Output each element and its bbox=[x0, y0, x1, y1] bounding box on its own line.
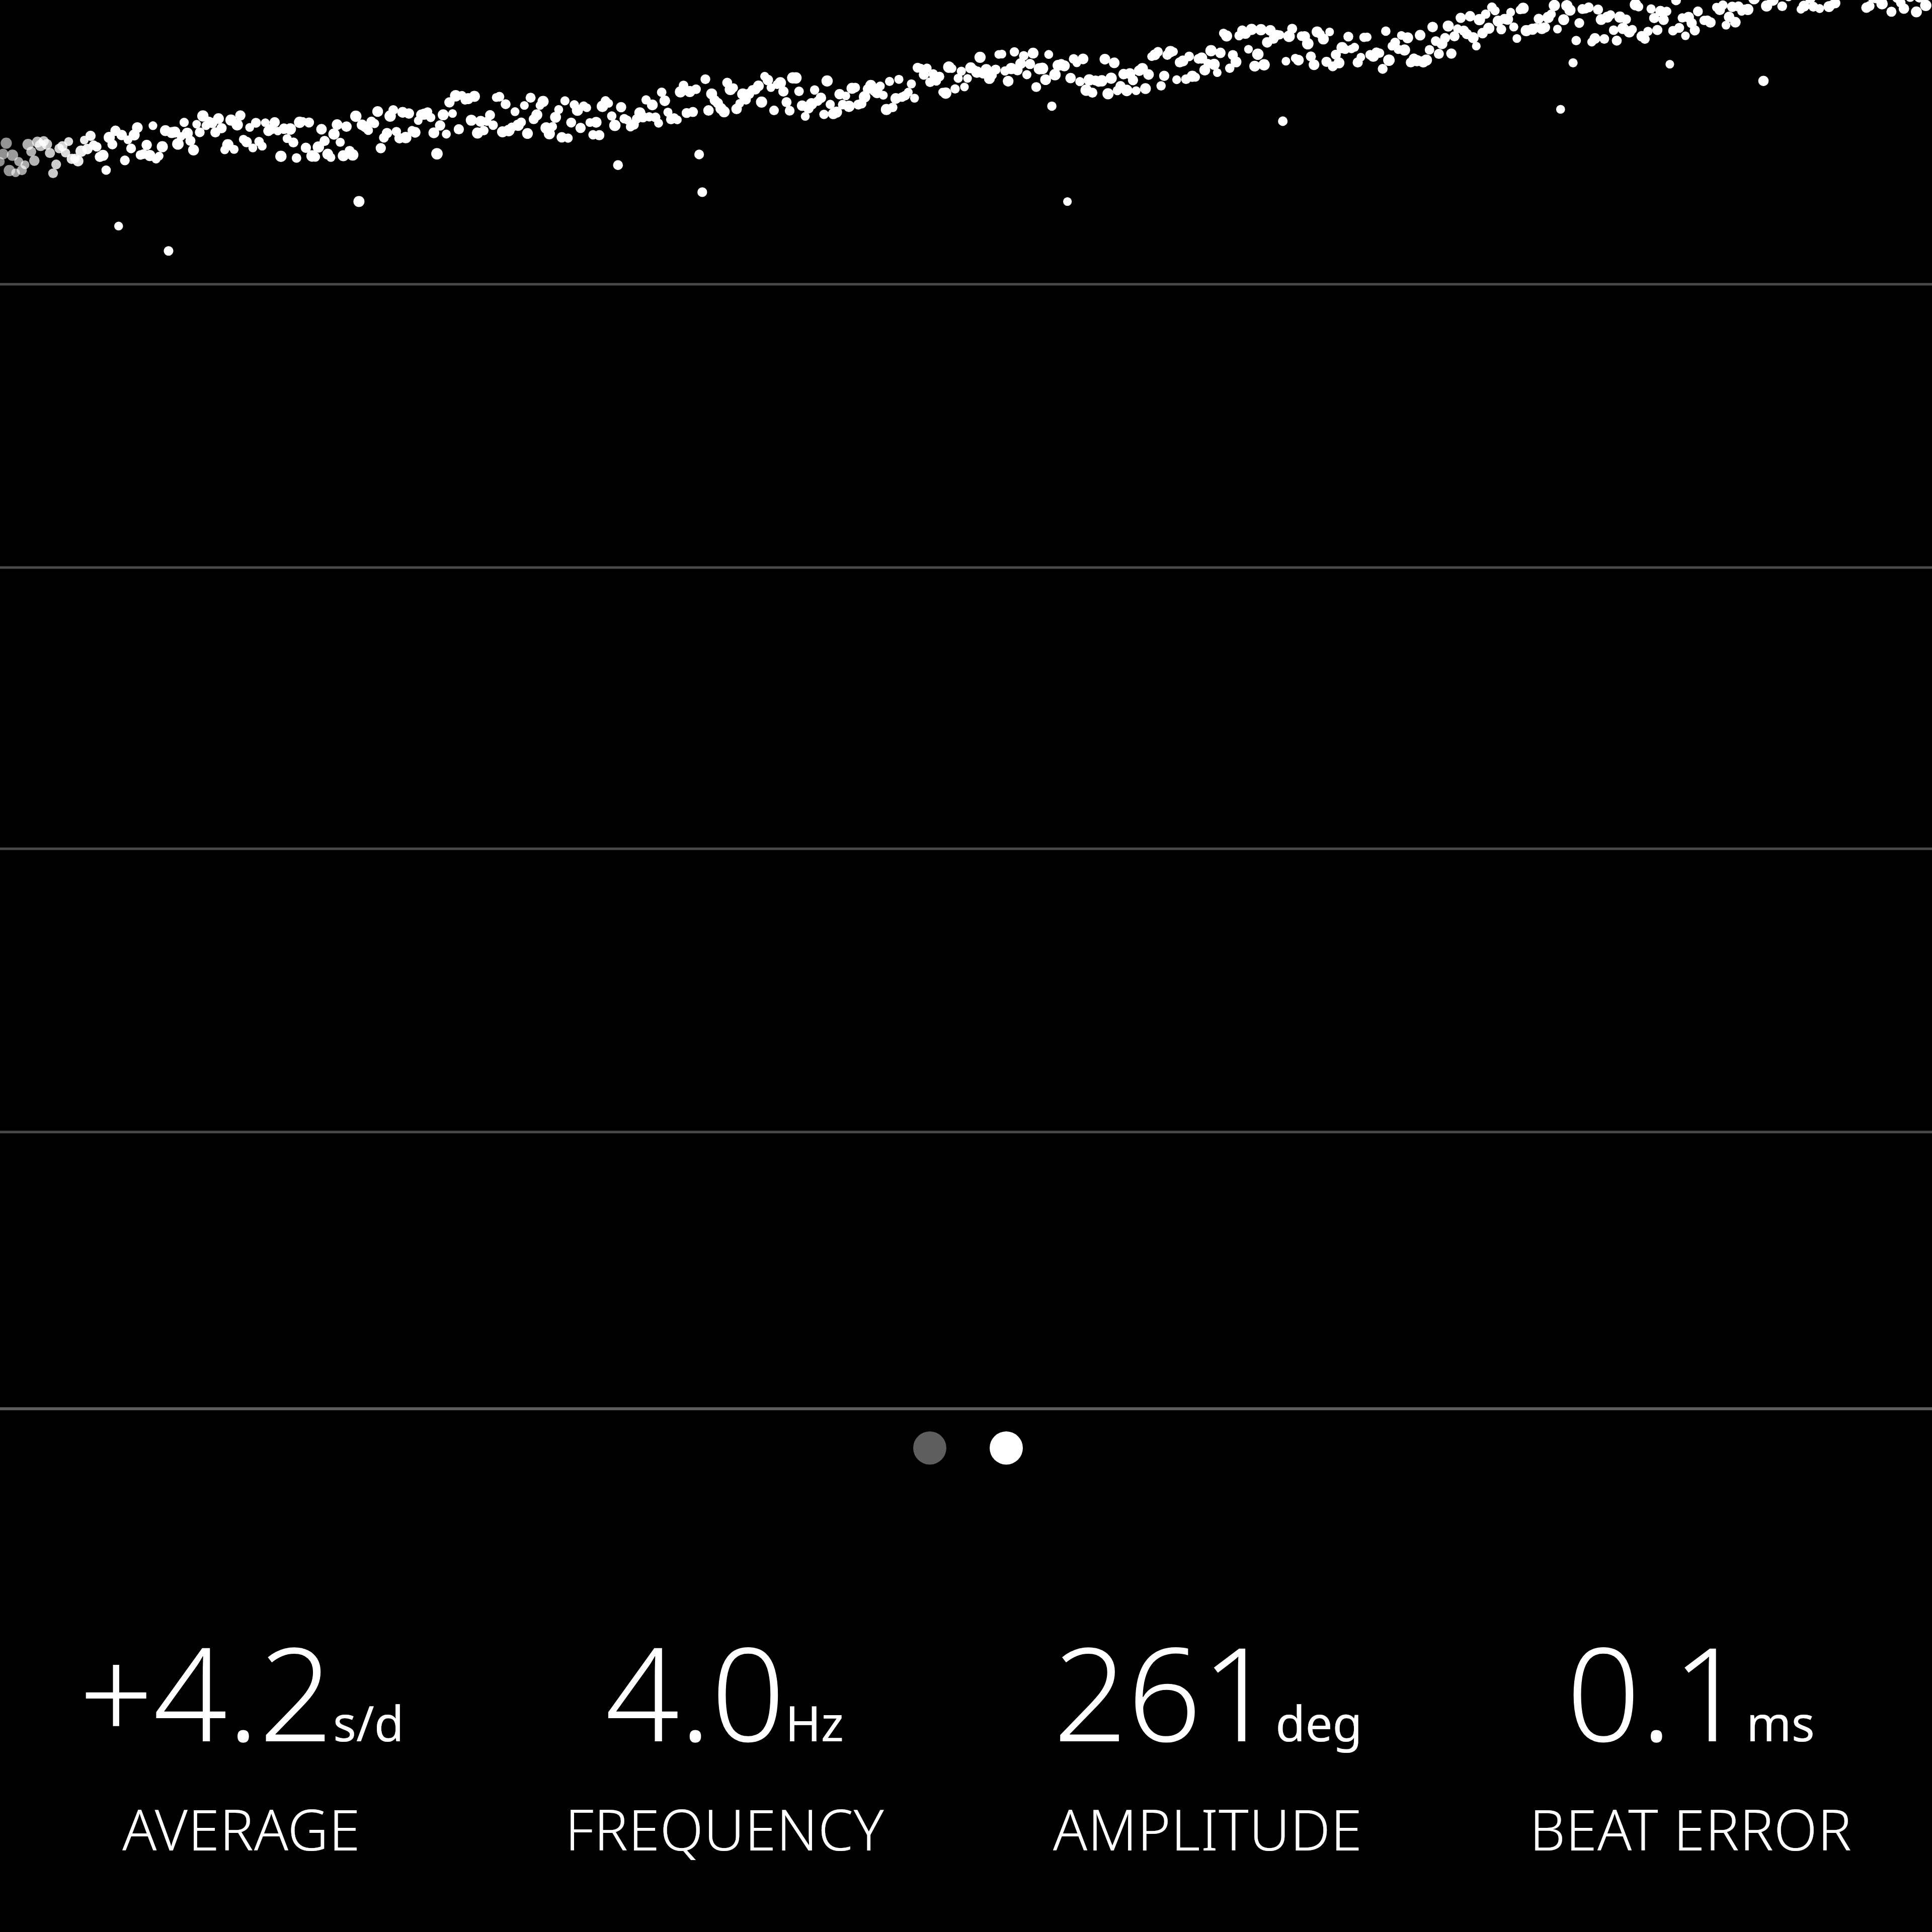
staticText: AMPLITUDE bbox=[1053, 1790, 1362, 1867]
staticText: BEAT ERROR bbox=[1530, 1790, 1852, 1867]
staticText: +4.2s/d bbox=[79, 1602, 404, 1779]
button[interactable]: +4.2s/d bbox=[0, 1602, 483, 1867]
button[interactable]: 4.0Hz bbox=[483, 1602, 966, 1867]
button[interactable]: 261deg bbox=[966, 1602, 1449, 1867]
staticText: 4.0Hz bbox=[605, 1602, 844, 1779]
button[interactable]: 0.1ms bbox=[1449, 1602, 1932, 1867]
staticText: FREQUENCY bbox=[565, 1790, 884, 1867]
staticText: AVERAGE bbox=[122, 1790, 361, 1867]
staticText: 261deg bbox=[1053, 1602, 1362, 1779]
button[interactable]: Page indicator, page 2 of 2 bbox=[913, 1431, 1023, 1465]
staticText: 0.1ms bbox=[1566, 1602, 1815, 1779]
